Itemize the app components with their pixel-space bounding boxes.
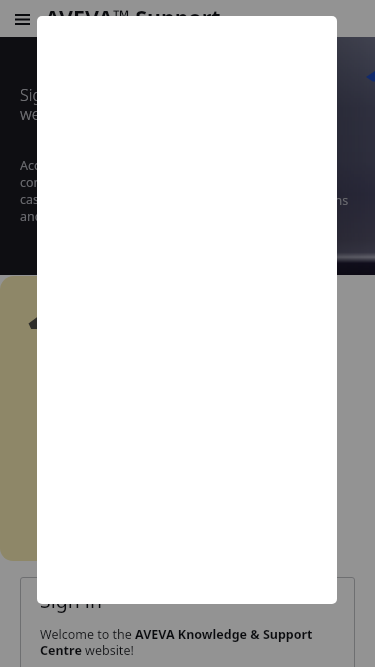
button[interactable]: Open navigation menu bbox=[9, 6, 35, 32]
staticText: AVEVA™ Support bbox=[45, 3, 221, 32]
staticText: Sign in to the AVEVA Support website bbox=[20, 84, 229, 124]
staticText: and notifications bbox=[250, 192, 349, 209]
staticText: Access your AVEVA products, content, kno… bbox=[20, 157, 200, 225]
staticText: Sign in bbox=[40, 587, 102, 614]
staticText: Welcome to the AVEVA Knowledge & Support… bbox=[40, 626, 337, 659]
